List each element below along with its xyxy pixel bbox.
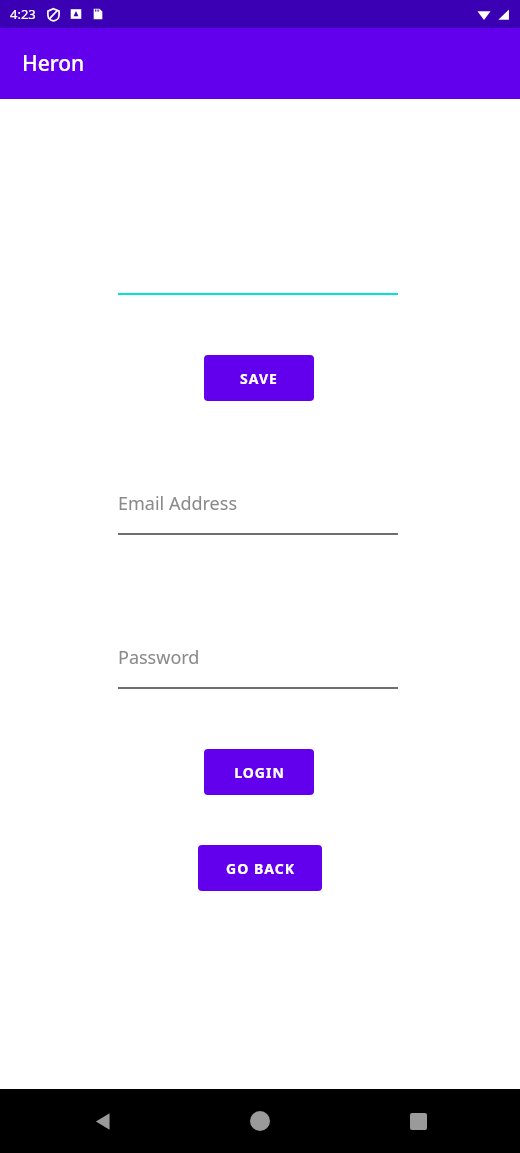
- staticText: Heron: [22, 49, 85, 78]
- button[interactable]: LOGIN: [204, 749, 314, 795]
- button[interactable]: GO BACK: [198, 845, 322, 891]
- button[interactable]: SAVE: [204, 355, 314, 401]
- staticText: GO BACK: [226, 859, 295, 878]
- staticText: Email Address: [118, 491, 238, 516]
- button[interactable]: [0, 290, 520, 298]
- button[interactable]: Recent apps: [363, 1089, 473, 1153]
- button[interactable]: Back: [48, 1089, 158, 1153]
- button[interactable]: Password: [0, 645, 520, 689]
- staticText: Password: [118, 645, 200, 670]
- button[interactable]: Home: [205, 1089, 315, 1153]
- staticText: LOGIN: [234, 763, 285, 782]
- staticText: SAVE: [240, 369, 278, 388]
- staticText: 4:23: [10, 5, 36, 23]
- button[interactable]: Email Address: [0, 491, 520, 535]
